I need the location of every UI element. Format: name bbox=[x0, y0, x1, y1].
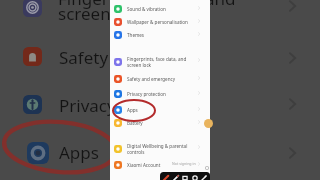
button[interactable]: Arrow bbox=[200, 174, 208, 180]
staticText: Sound & vibration bbox=[127, 6, 166, 12]
button[interactable]: Open bbox=[288, 147, 300, 159]
button[interactable]: Open bbox=[288, 98, 300, 110]
button[interactable]: Open bbox=[288, 52, 300, 64]
staticText: Privacy bbox=[59, 94, 116, 117]
button[interactable]: Xiaomi Account bbox=[114, 160, 210, 169]
button[interactable]: Privacy protection bbox=[114, 89, 210, 98]
staticText: Themes bbox=[127, 32, 145, 38]
button[interactable]: Battery bbox=[114, 118, 210, 127]
staticText: Wallpaper & personalisation bbox=[127, 19, 188, 25]
button[interactable]: Fingerprints, face data, and bbox=[114, 56, 210, 68]
button[interactable]: Themes bbox=[114, 30, 210, 39]
button[interactable]: Rectangle bbox=[181, 174, 189, 180]
button[interactable]: Circle bbox=[191, 174, 199, 180]
staticText: Digital Wellbeing & parental bbox=[127, 143, 188, 149]
button[interactable]: Open bbox=[288, 0, 300, 12]
staticText: Safety a bbox=[59, 46, 123, 69]
button[interactable]: Setting icon bbox=[23, 47, 42, 66]
staticText: Not signing in bbox=[172, 161, 196, 166]
button[interactable]: Safety and emergency bbox=[114, 74, 210, 83]
staticText: Xiaomi Account bbox=[127, 162, 161, 168]
button[interactable]: Sound & vibration bbox=[114, 4, 210, 13]
staticText: screen lock bbox=[127, 62, 152, 68]
button[interactable]: Pen bbox=[162, 174, 170, 180]
staticText: Privacy protection bbox=[127, 91, 166, 97]
staticText: Apps bbox=[127, 107, 138, 113]
staticText: screen l bbox=[58, 2, 120, 25]
staticText: controls bbox=[127, 149, 145, 155]
button[interactable]: Setting icon bbox=[23, 95, 42, 114]
button[interactable]: Setting icon bbox=[27, 142, 49, 164]
staticText: Fingerpr bbox=[58, 0, 127, 10]
button[interactable]: Apps bbox=[114, 105, 210, 114]
button[interactable]: Marker bbox=[172, 174, 180, 180]
staticText: Safety and emergency bbox=[127, 76, 176, 82]
staticText: Apps bbox=[59, 141, 99, 164]
button[interactable]: Setting icon bbox=[23, 0, 42, 17]
staticText: Fingerprints, face data, and bbox=[127, 56, 187, 62]
button[interactable]: Digital Wellbeing & parental bbox=[114, 143, 210, 155]
staticText: Battery bbox=[127, 120, 143, 126]
staticText: and bbox=[205, 0, 236, 10]
button[interactable]: Wallpaper & personalisation bbox=[114, 17, 210, 26]
